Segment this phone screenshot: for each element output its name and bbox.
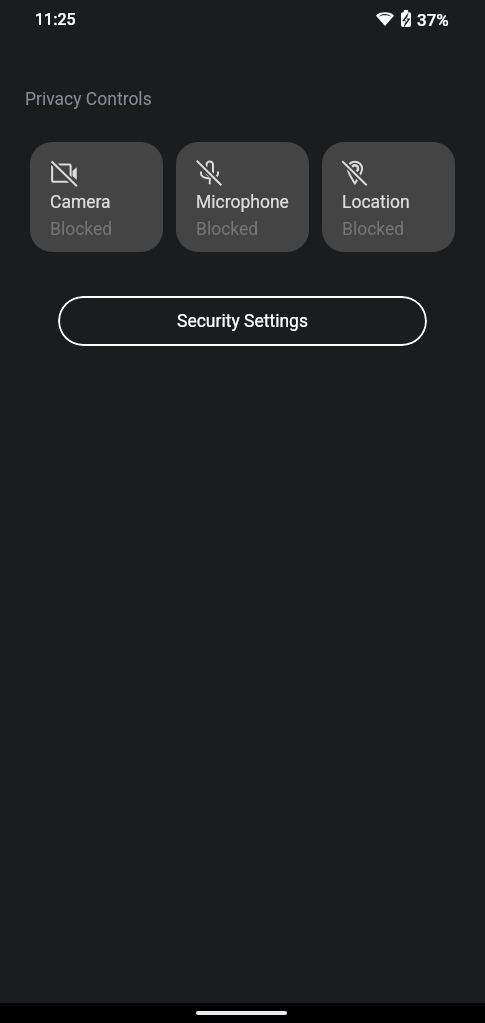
button[interactable]: Microphone blocked bbox=[176, 142, 309, 252]
staticText: Camera bbox=[50, 192, 111, 213]
button[interactable]: Location blocked bbox=[322, 142, 455, 252]
staticText: Blocked bbox=[50, 219, 113, 240]
staticText: Location bbox=[342, 192, 410, 213]
other: Camera blocked bbox=[51, 161, 76, 186]
staticText: Blocked bbox=[196, 219, 259, 240]
other: Battery charging bbox=[401, 10, 411, 27]
button[interactable]: Security Settings bbox=[58, 296, 427, 346]
staticText: 37% bbox=[417, 10, 449, 30]
other: Location blocked bbox=[343, 161, 368, 186]
staticText: Security Settings bbox=[177, 311, 308, 332]
other: Microphone blocked bbox=[197, 161, 222, 186]
staticText: Microphone bbox=[196, 192, 289, 213]
button[interactable]: Camera blocked bbox=[30, 142, 163, 252]
other: Wi-Fi bbox=[376, 11, 394, 26]
staticText: Blocked bbox=[342, 219, 405, 240]
staticText: Privacy Controls bbox=[25, 89, 152, 110]
staticText: 11:25 bbox=[35, 10, 76, 29]
